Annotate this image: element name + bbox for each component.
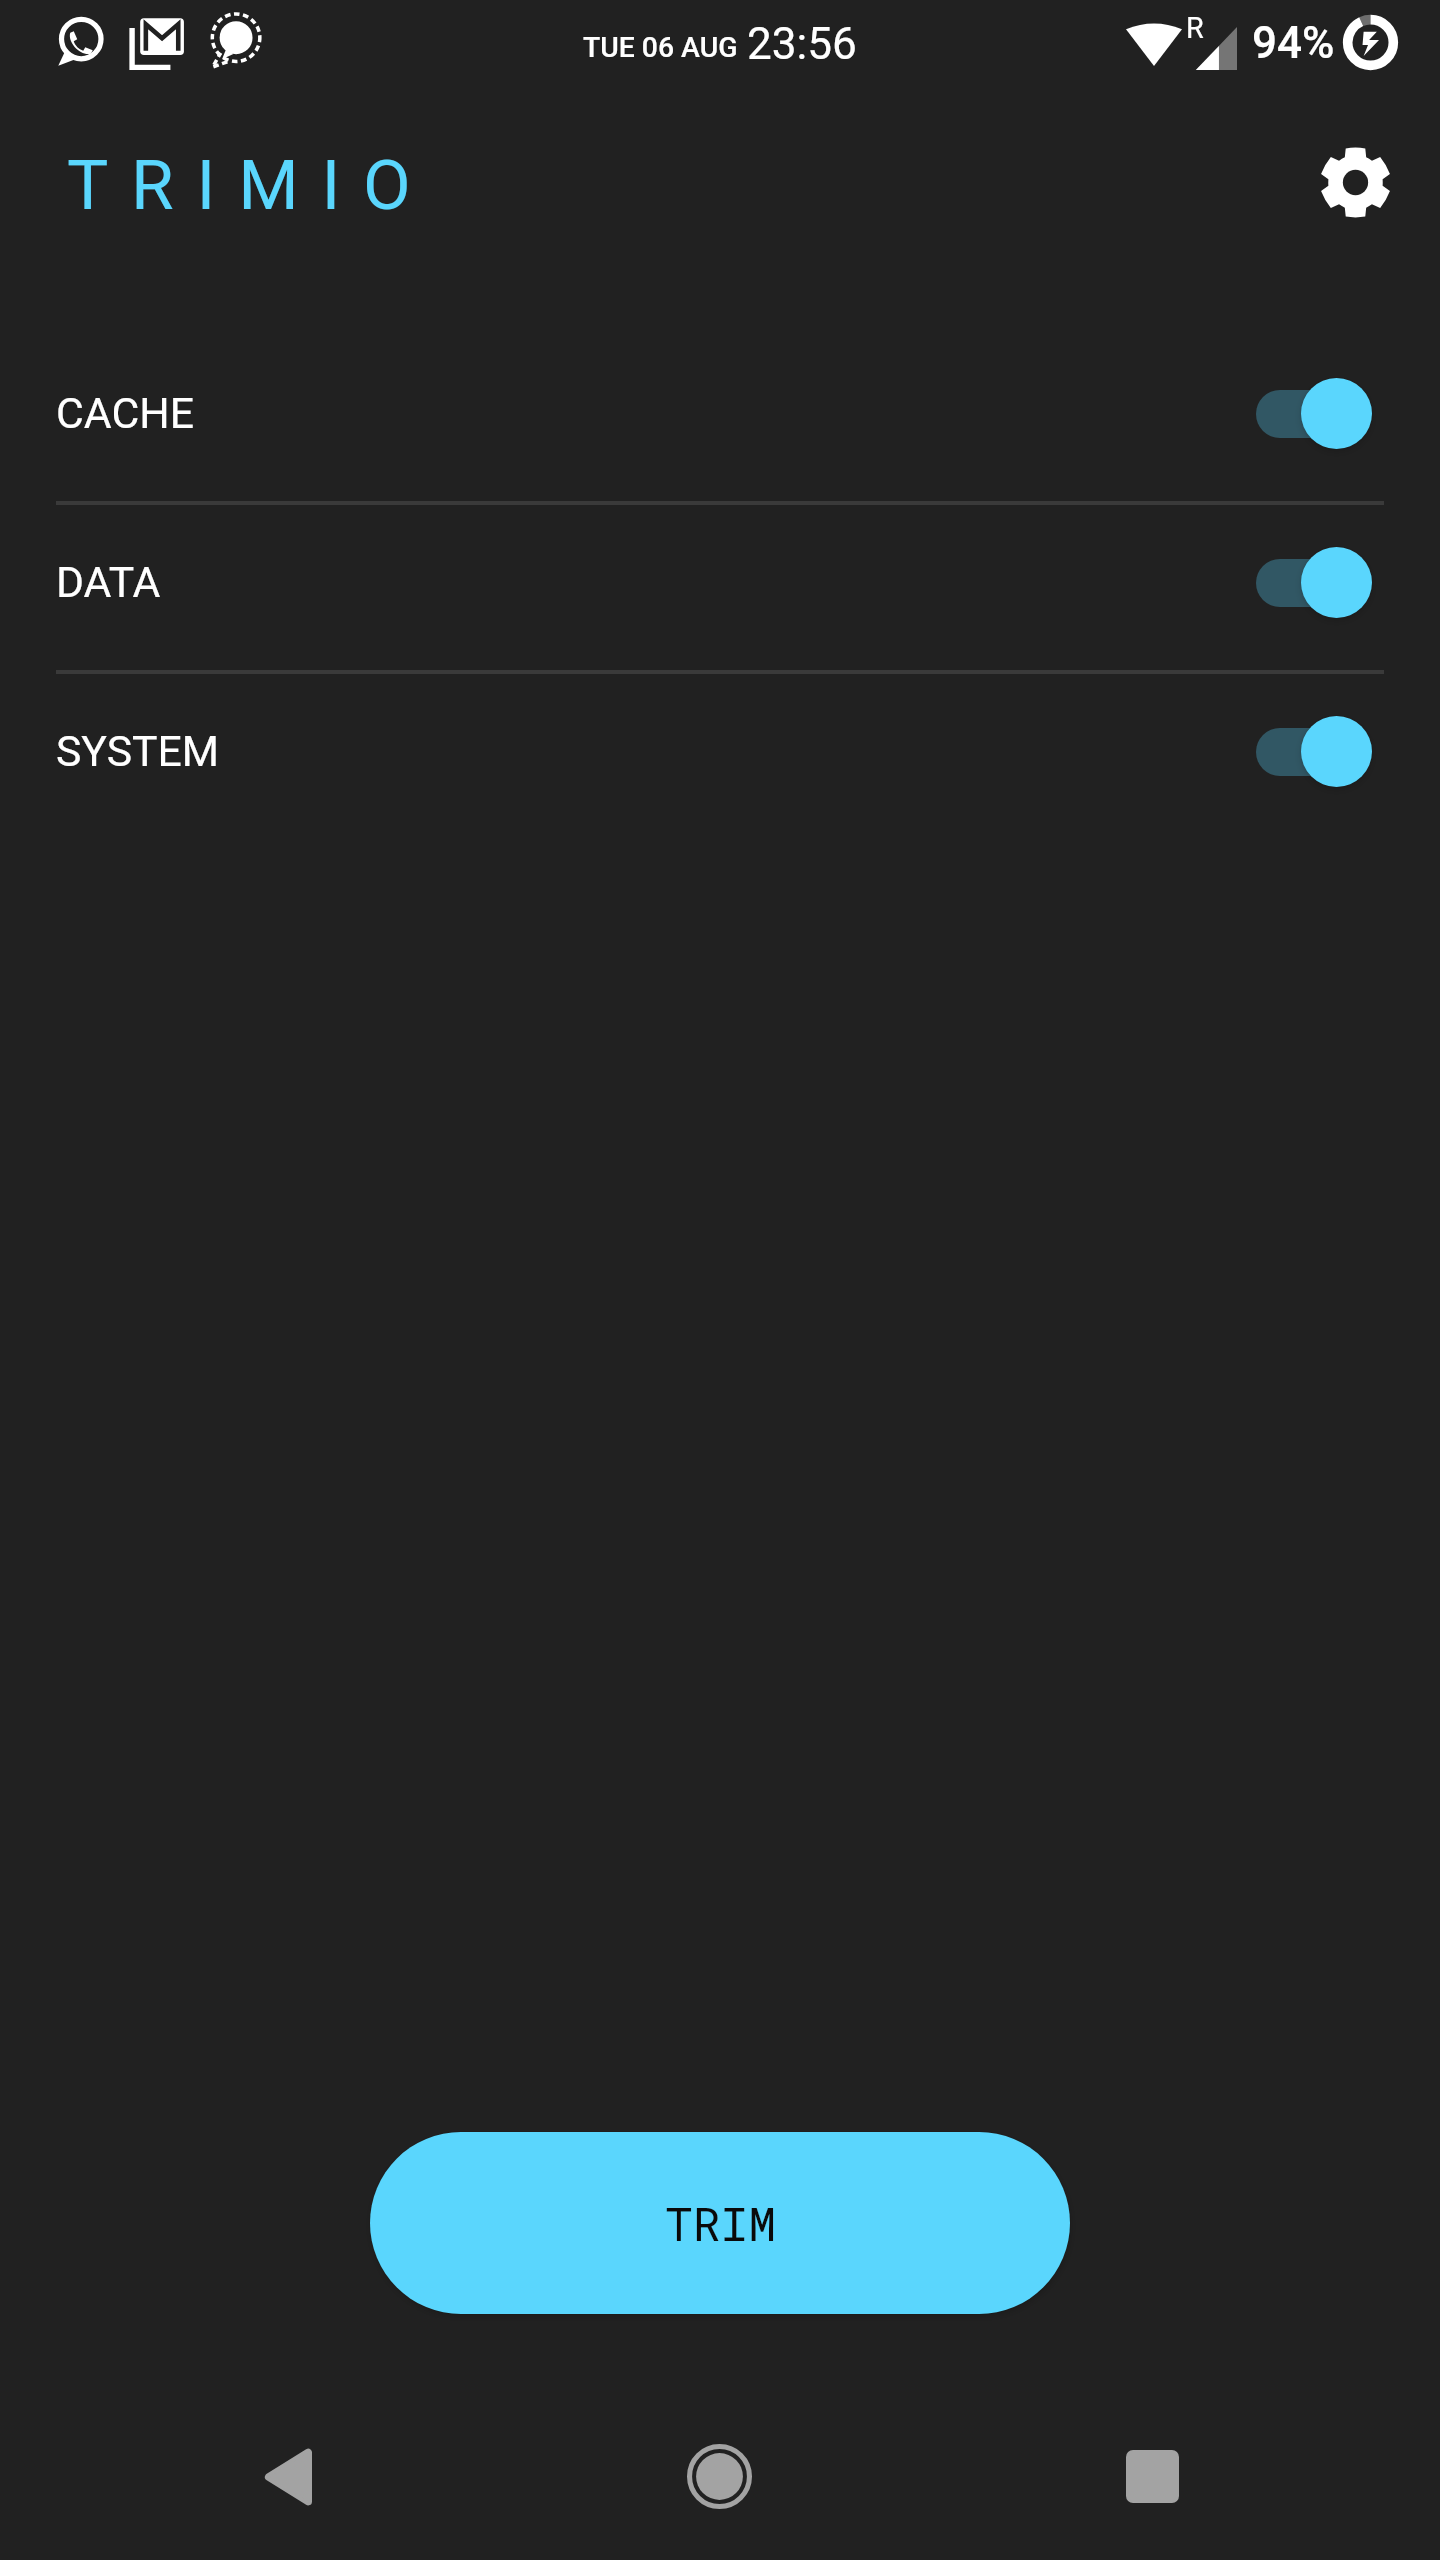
button[interactable]: TRIM xyxy=(370,2132,1070,2314)
button[interactable]: CACHE xyxy=(0,336,1440,501)
staticText: SYSTEM xyxy=(56,726,219,776)
button[interactable]: SYSTEM xyxy=(0,674,1440,839)
button[interactable]: Settings xyxy=(1271,98,1439,266)
button[interactable]: DATA xyxy=(0,505,1440,670)
staticText: TRIMIO xyxy=(67,145,434,226)
button[interactable]: Home xyxy=(503,2417,936,2536)
button[interactable]: Back xyxy=(71,2417,503,2536)
staticText: 23:56 xyxy=(747,18,857,70)
staticText: 94% xyxy=(1252,17,1335,69)
staticText: CACHE xyxy=(56,388,194,438)
button[interactable]: Recents xyxy=(936,2417,1369,2536)
staticText: R xyxy=(1186,11,1204,45)
staticText: DATA xyxy=(56,557,161,607)
staticText: TRIM xyxy=(665,2193,776,2254)
staticText: TUE 06 AUG xyxy=(583,31,738,64)
